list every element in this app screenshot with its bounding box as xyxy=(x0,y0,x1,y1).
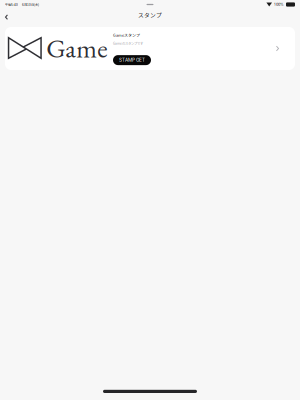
button[interactable]: Game xyxy=(5,27,295,70)
staticText: Gameスタンプ xyxy=(113,32,140,38)
staticText: スタンプ xyxy=(138,11,162,19)
staticText: STAMP GET xyxy=(119,57,145,63)
staticText: Game xyxy=(46,31,107,65)
staticText: Gameのスタンプです xyxy=(113,41,143,46)
staticText: 100% xyxy=(274,2,284,7)
staticText: 6月10日(水) xyxy=(22,2,39,7)
staticText: 午後5:40 xyxy=(5,2,18,7)
button[interactable]: Back xyxy=(0,10,17,25)
